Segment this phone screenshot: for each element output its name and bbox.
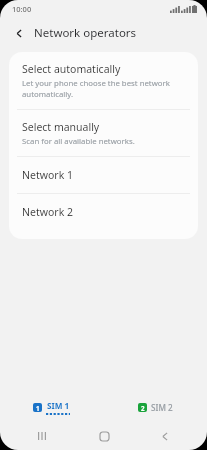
staticText: Network 2 <box>22 205 73 219</box>
staticText: 10:00 <box>12 4 32 14</box>
button[interactable]: 2 <box>132 399 179 416</box>
staticText: Select automatically <box>22 62 121 76</box>
button[interactable]: Recent apps <box>22 423 62 449</box>
staticText: SIM 2 <box>151 402 173 413</box>
staticText: 2 <box>141 404 145 412</box>
button[interactable]: Network 1 <box>9 157 198 193</box>
staticText: SIM 1 <box>47 400 70 411</box>
button[interactable]: Home <box>84 423 124 449</box>
staticText: Network operators <box>34 25 137 41</box>
button[interactable]: 1 <box>27 397 76 418</box>
staticText: Let your phone choose the best network a… <box>22 78 180 100</box>
button[interactable]: Select automatically <box>9 52 198 109</box>
staticText: Network 1 <box>22 168 73 182</box>
staticText: Select manually <box>22 120 100 134</box>
button[interactable]: Select manually <box>9 110 198 156</box>
button[interactable]: Navigate up <box>8 22 30 44</box>
staticText: 1 <box>36 404 40 412</box>
staticText: Scan for all available networks. <box>22 136 135 147</box>
button[interactable]: Back <box>145 423 185 449</box>
button[interactable]: Network 2 <box>9 194 198 230</box>
